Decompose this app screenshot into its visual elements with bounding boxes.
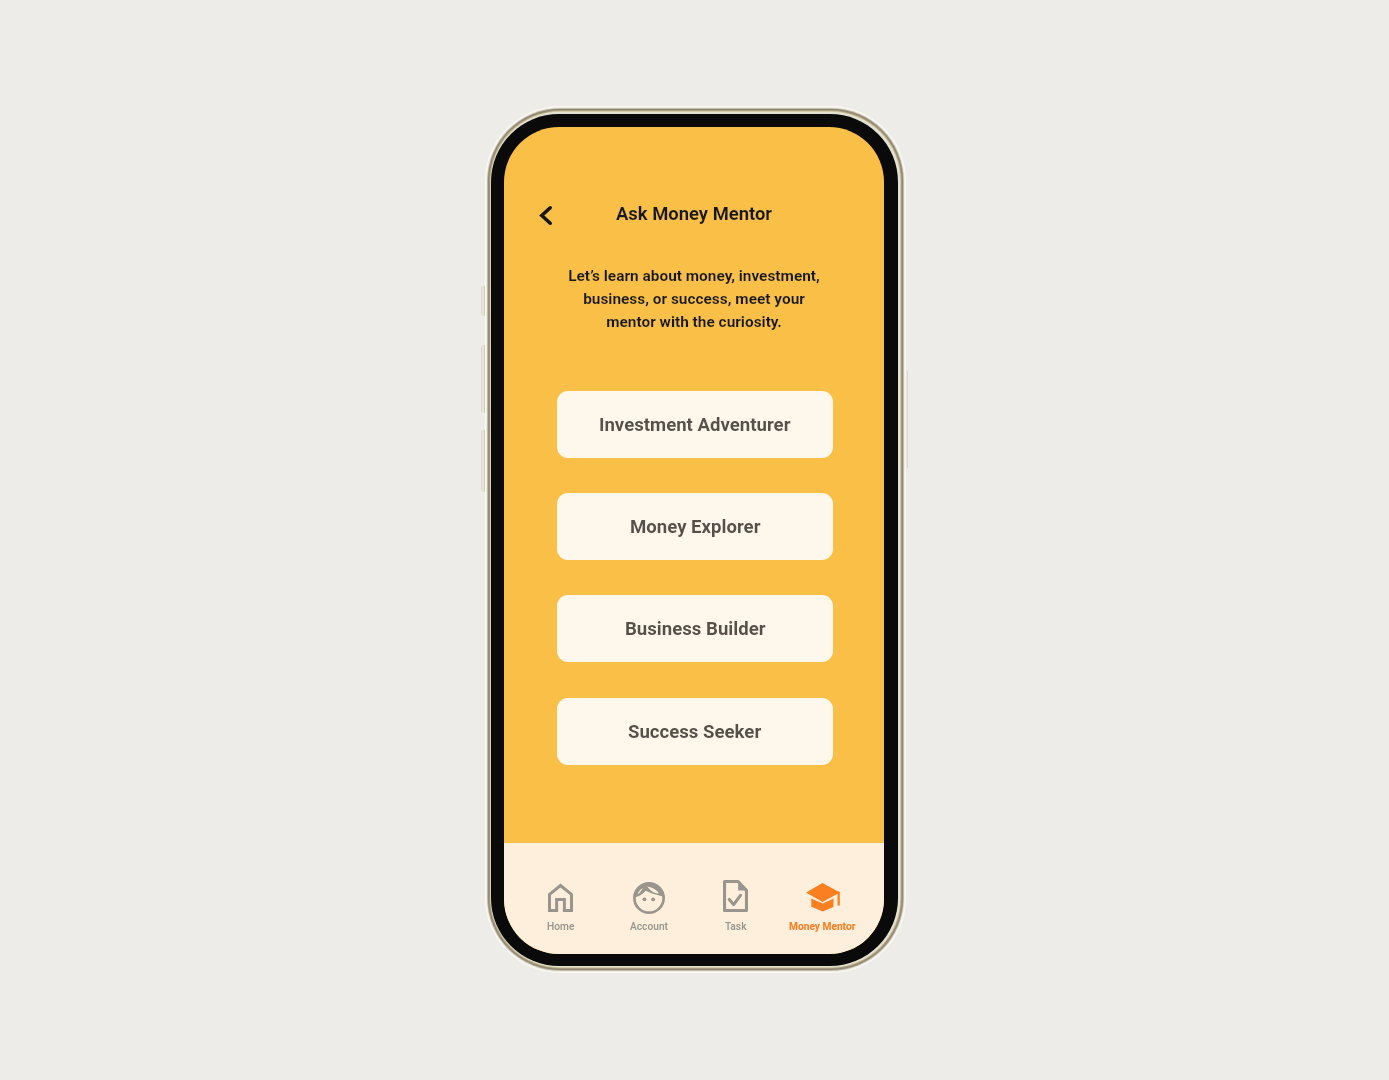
staticText: Success Seeker [628, 721, 762, 743]
staticText: Money Mentor [789, 921, 856, 933]
button[interactable]: Money Mentor [779, 881, 866, 945]
staticText: Account [630, 921, 668, 933]
staticText: Ask Money Mentor [504, 203, 884, 225]
button[interactable]: Home [517, 881, 604, 945]
button[interactable]: Task [692, 881, 779, 945]
staticText: Task [725, 921, 747, 933]
button[interactable]: Success Seeker [557, 698, 833, 765]
button[interactable]: Account [605, 881, 692, 945]
staticText: Business Builder [625, 618, 766, 640]
staticText: Money Explorer [630, 516, 761, 538]
staticText: Let’s learn about money, investment, bus… [504, 267, 884, 331]
button[interactable]: Money Explorer [557, 493, 833, 560]
button[interactable]: Business Builder [557, 595, 833, 662]
staticText: Investment Adventurer [599, 414, 791, 436]
staticText: Home [547, 921, 575, 933]
button[interactable]: Back [528, 197, 564, 233]
button[interactable]: Investment Adventurer [557, 391, 833, 458]
